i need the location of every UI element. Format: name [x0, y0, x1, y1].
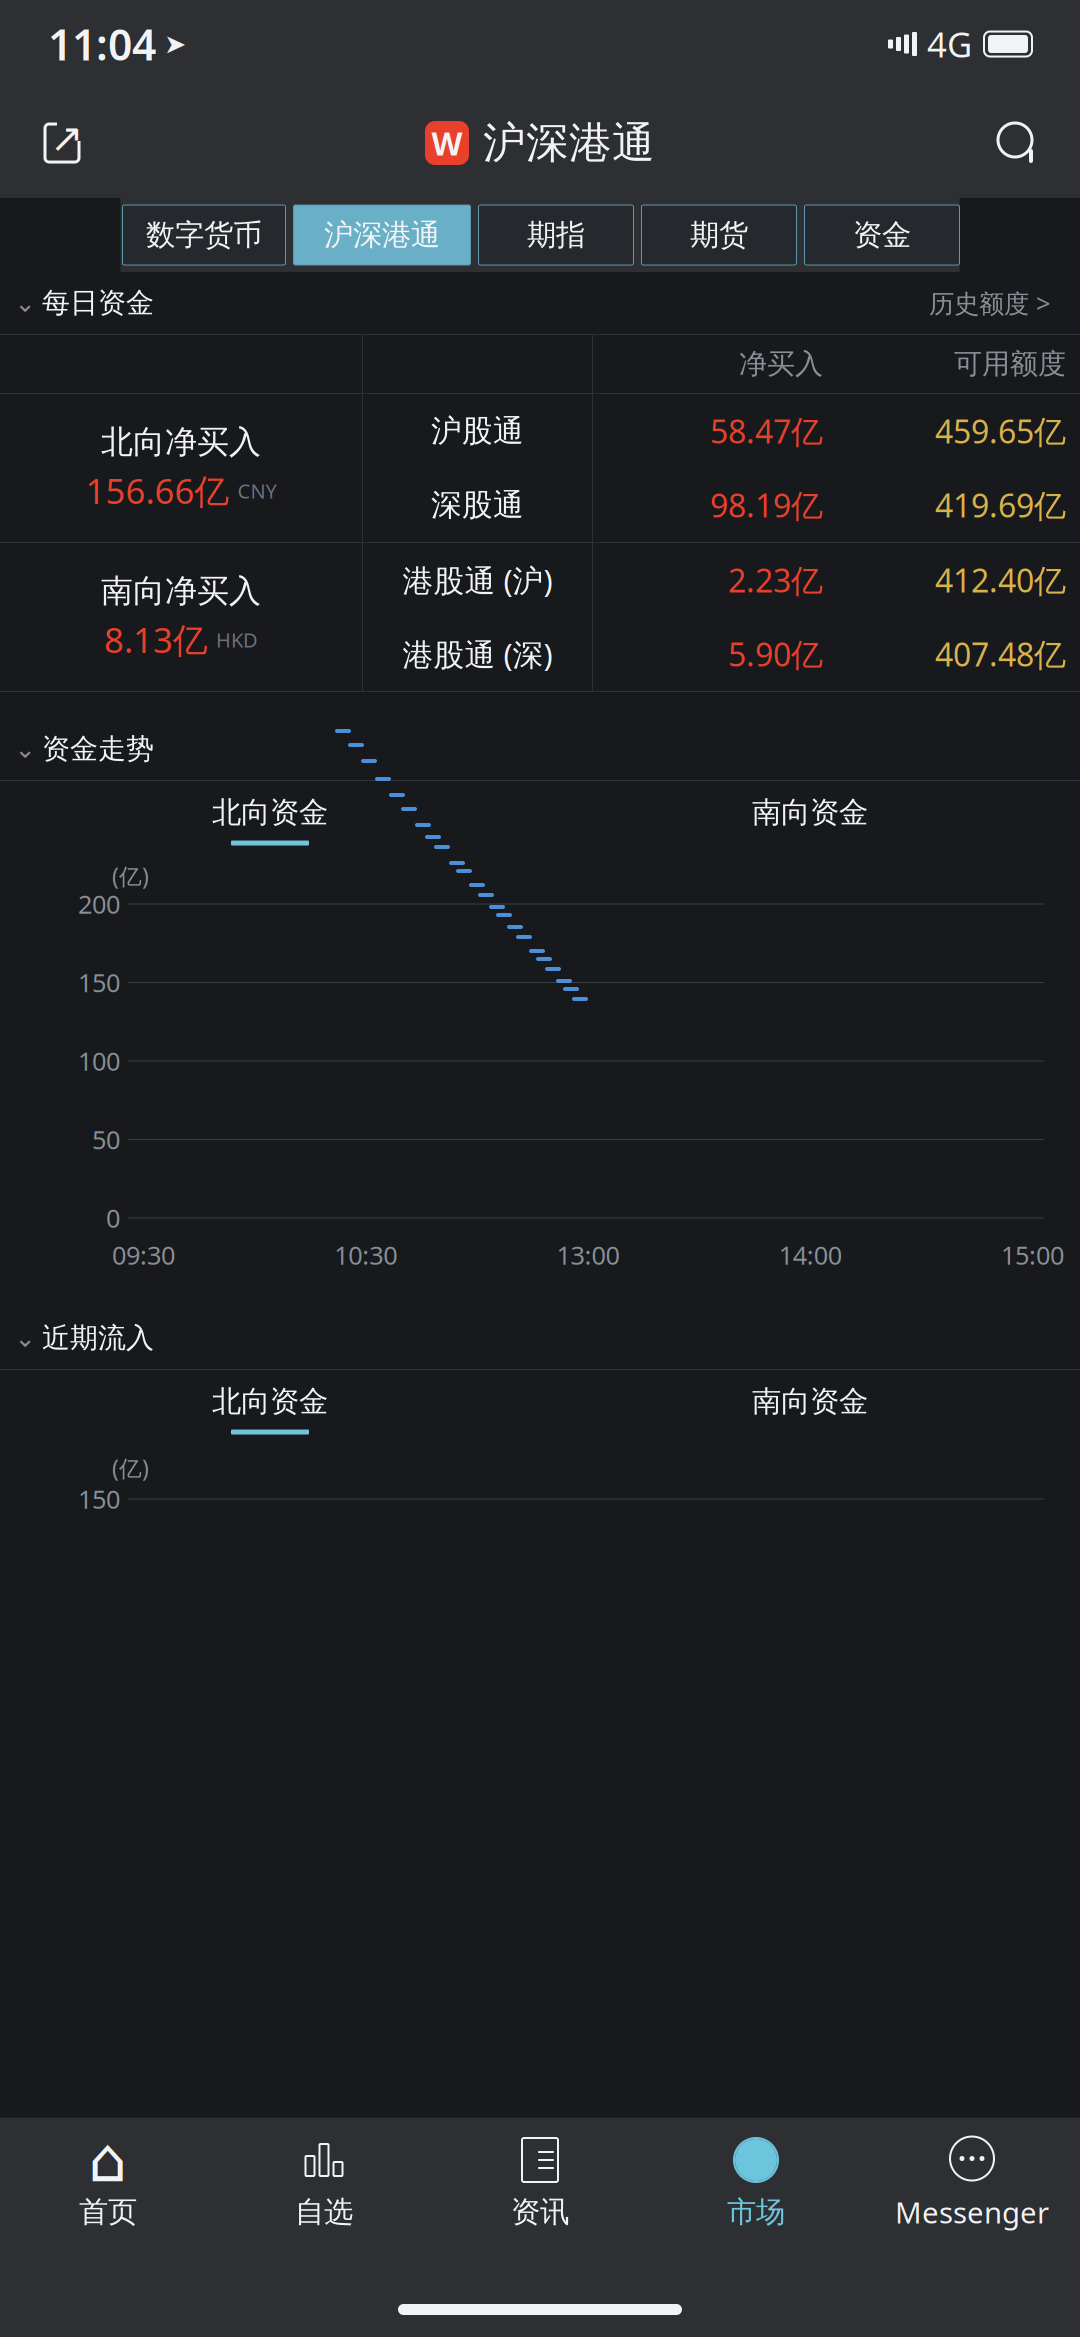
staticText: 资金走势 [42, 732, 154, 766]
staticText: ⌂ [88, 2125, 127, 2195]
staticText: 历史额度 > [929, 286, 1050, 320]
staticText: 09:30 [112, 1238, 175, 1272]
staticText: 459.65亿 [935, 410, 1066, 452]
button[interactable]: 搜索 [982, 107, 1054, 179]
staticText: 4G [927, 21, 972, 67]
button[interactable]: 北向资金 [0, 1370, 540, 1448]
button[interactable]: 分享 [26, 107, 98, 179]
staticText: 首页 [79, 2194, 137, 2230]
staticText: (亿) [112, 1453, 149, 1483]
button[interactable]: 资金 [804, 205, 959, 265]
staticText: 2.23亿 [728, 559, 823, 601]
staticText: 可用额度 [954, 347, 1066, 381]
staticText: 净买入 [739, 347, 823, 381]
button[interactable]: 自选 [216, 2123, 432, 2243]
staticText: 北向净买入 [101, 422, 261, 462]
button[interactable]: 市场 [648, 2123, 864, 2243]
staticText: (亿) [112, 861, 149, 891]
staticText: 资金 [853, 217, 911, 253]
staticText: 8.13亿 [104, 617, 208, 663]
staticText: 100 [78, 1044, 120, 1078]
staticText: 412.40亿 [935, 559, 1066, 601]
staticText: ↗ [50, 115, 84, 161]
staticText: 沪深港通 [483, 117, 655, 169]
button[interactable]: 期货 [641, 205, 796, 265]
button[interactable]: ⌂ [0, 2123, 216, 2243]
button[interactable]: Messenger [864, 2123, 1080, 2243]
staticText: 沪股通 [431, 412, 524, 450]
staticText: 200 [78, 887, 120, 921]
staticText: ⌄ [14, 1324, 35, 1352]
staticText: 50 [92, 1123, 120, 1156]
staticText: 数字货币 [146, 217, 262, 253]
staticText: 北向资金 [212, 794, 328, 830]
staticText: 58.47亿 [710, 410, 823, 452]
button[interactable]: 南向资金 [540, 781, 1080, 859]
staticText: 13:00 [556, 1238, 619, 1272]
staticText: ⌄ [14, 735, 35, 763]
button[interactable]: 资讯 [432, 2123, 648, 2243]
staticText: 深股通 [431, 486, 524, 524]
staticText: 期指 [527, 217, 585, 253]
staticText: 407.48亿 [935, 633, 1066, 675]
staticText: 沪深港通 [324, 217, 440, 253]
staticText: ⌄ [14, 289, 35, 317]
staticText: 5.90亿 [728, 633, 823, 675]
staticText: W [431, 122, 462, 164]
button[interactable]: 数字货币 [122, 205, 285, 265]
staticText: 14:00 [779, 1238, 842, 1272]
staticText: 419.69亿 [935, 484, 1066, 526]
staticText: 南向净买入 [101, 571, 261, 611]
staticText: 港股通 (沪) [402, 560, 552, 600]
staticText: 11:04 [48, 16, 156, 72]
staticText: 南向资金 [752, 794, 868, 830]
staticText: 98.19亿 [710, 484, 823, 526]
staticText: 150 [78, 966, 120, 999]
staticText: CNY [237, 477, 276, 504]
staticText: HKD [216, 626, 258, 653]
button[interactable]: 北向资金 [0, 781, 540, 859]
staticText: 近期流入 [42, 1321, 154, 1355]
button[interactable]: 沪深港通 [293, 205, 470, 265]
staticText: 市场 [727, 2194, 785, 2230]
staticText: 北向资金 [212, 1383, 328, 1419]
staticText: 15:00 [1001, 1238, 1064, 1272]
button[interactable]: 南向资金 [540, 1370, 1080, 1448]
button[interactable]: 历史额度 > [913, 278, 1066, 328]
staticText: 0 [106, 1201, 120, 1235]
button[interactable]: 期指 [478, 205, 633, 265]
staticText: 10:30 [334, 1238, 397, 1272]
staticText: 南向资金 [752, 1383, 868, 1419]
staticText: 港股通 (深) [402, 634, 552, 674]
staticText: 每日资金 [42, 286, 154, 320]
staticText: 期货 [690, 217, 748, 253]
staticText: 150 [78, 1482, 120, 1516]
staticText: ➤ [164, 29, 186, 59]
staticText: 自选 [295, 2194, 353, 2230]
staticText: 156.66亿 [85, 468, 229, 514]
staticText: 资讯 [511, 2194, 569, 2230]
staticText: Messenger [895, 2192, 1049, 2231]
